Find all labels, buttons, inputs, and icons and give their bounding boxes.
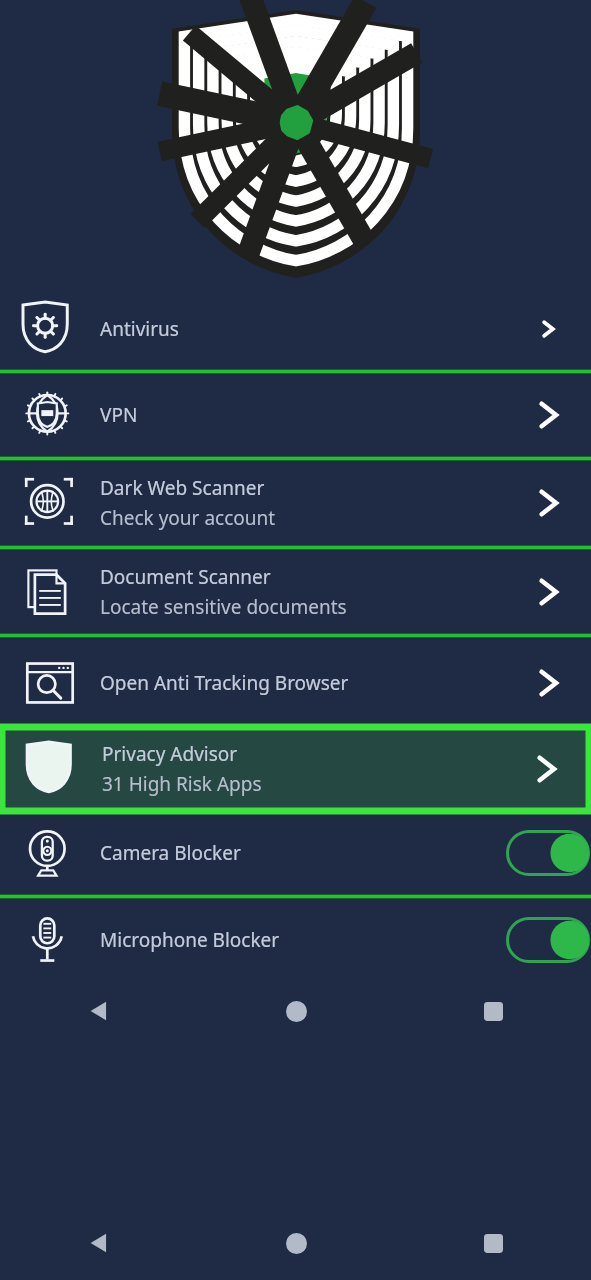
button[interactable]: Privacy Advisor xyxy=(2,727,589,811)
button[interactable]: Toggle on xyxy=(506,917,590,963)
button[interactable]: VPN xyxy=(0,374,591,456)
staticText: Camera Blocker xyxy=(100,840,241,866)
staticText: Privacy Advisor xyxy=(102,741,238,767)
staticText: Open Anti Tracking Browser xyxy=(100,670,349,696)
button[interactable]: Camera Blocker xyxy=(0,811,591,894)
button[interactable]: Document Scanner xyxy=(0,550,591,633)
button[interactable]: Antivirus xyxy=(0,288,591,369)
button[interactable]: Recents xyxy=(469,1219,517,1267)
staticText: VPN xyxy=(100,402,138,428)
button[interactable]: Open Anti Tracking Browser xyxy=(0,638,591,727)
button[interactable]: Back xyxy=(75,1219,123,1267)
staticText: 31 High Risk Apps xyxy=(102,771,262,797)
button[interactable]: Recents xyxy=(469,987,517,1035)
staticText: Dark Web Scanner xyxy=(100,475,265,501)
button[interactable]: Microphone Blocker xyxy=(0,899,591,981)
button[interactable]: Home xyxy=(272,1219,320,1267)
staticText: Check your account xyxy=(100,505,276,531)
staticText: Locate sensitive documents xyxy=(100,594,347,620)
button[interactable]: Toggle on xyxy=(506,830,590,876)
staticText: Document Scanner xyxy=(100,564,271,590)
button[interactable]: Dark Web Scanner xyxy=(0,461,591,545)
button[interactable]: Back xyxy=(75,987,123,1035)
staticText: Microphone Blocker xyxy=(100,927,280,953)
staticText: Antivirus xyxy=(100,316,179,342)
button[interactable]: Home xyxy=(272,987,320,1035)
